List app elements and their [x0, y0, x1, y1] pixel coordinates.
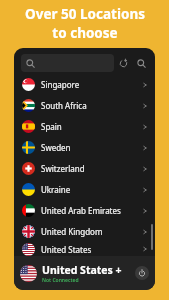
- button[interactable]: Sweden: [14, 137, 155, 158]
- button[interactable]: Refresh: [114, 54, 132, 72]
- staticText: United Kingdom: [41, 226, 142, 237]
- staticText: Singapore: [41, 79, 142, 90]
- button[interactable]: United States: [14, 242, 155, 256]
- button[interactable]: Connect: [135, 266, 149, 280]
- staticText: Not Connected: [42, 277, 79, 284]
- button[interactable]: United Arab Emirates: [14, 200, 155, 221]
- button[interactable]: United Kingdom: [14, 221, 155, 242]
- button[interactable]: Spain: [14, 116, 155, 137]
- button[interactable]: Search: [132, 54, 150, 72]
- button[interactable]: South Africa: [14, 95, 155, 116]
- staticText: Over 50 Locations: [25, 5, 145, 23]
- staticText: Switzerland: [41, 163, 142, 174]
- staticText: South Africa: [41, 100, 142, 111]
- staticText: Spain: [41, 121, 142, 132]
- staticText: United States + A...: [42, 263, 132, 277]
- staticText: United States: [41, 244, 142, 255]
- staticText: Ukraine: [41, 184, 142, 195]
- button[interactable]: [21, 54, 114, 72]
- staticText: United Arab Emirates: [41, 205, 142, 216]
- button[interactable]: Singapore: [14, 74, 155, 95]
- button[interactable]: Switzerland: [14, 158, 155, 179]
- staticText: to choose: [52, 24, 118, 42]
- button[interactable]: United States + A...: [14, 256, 155, 290]
- staticText: Sweden: [41, 142, 142, 153]
- button[interactable]: Ukraine: [14, 179, 155, 200]
